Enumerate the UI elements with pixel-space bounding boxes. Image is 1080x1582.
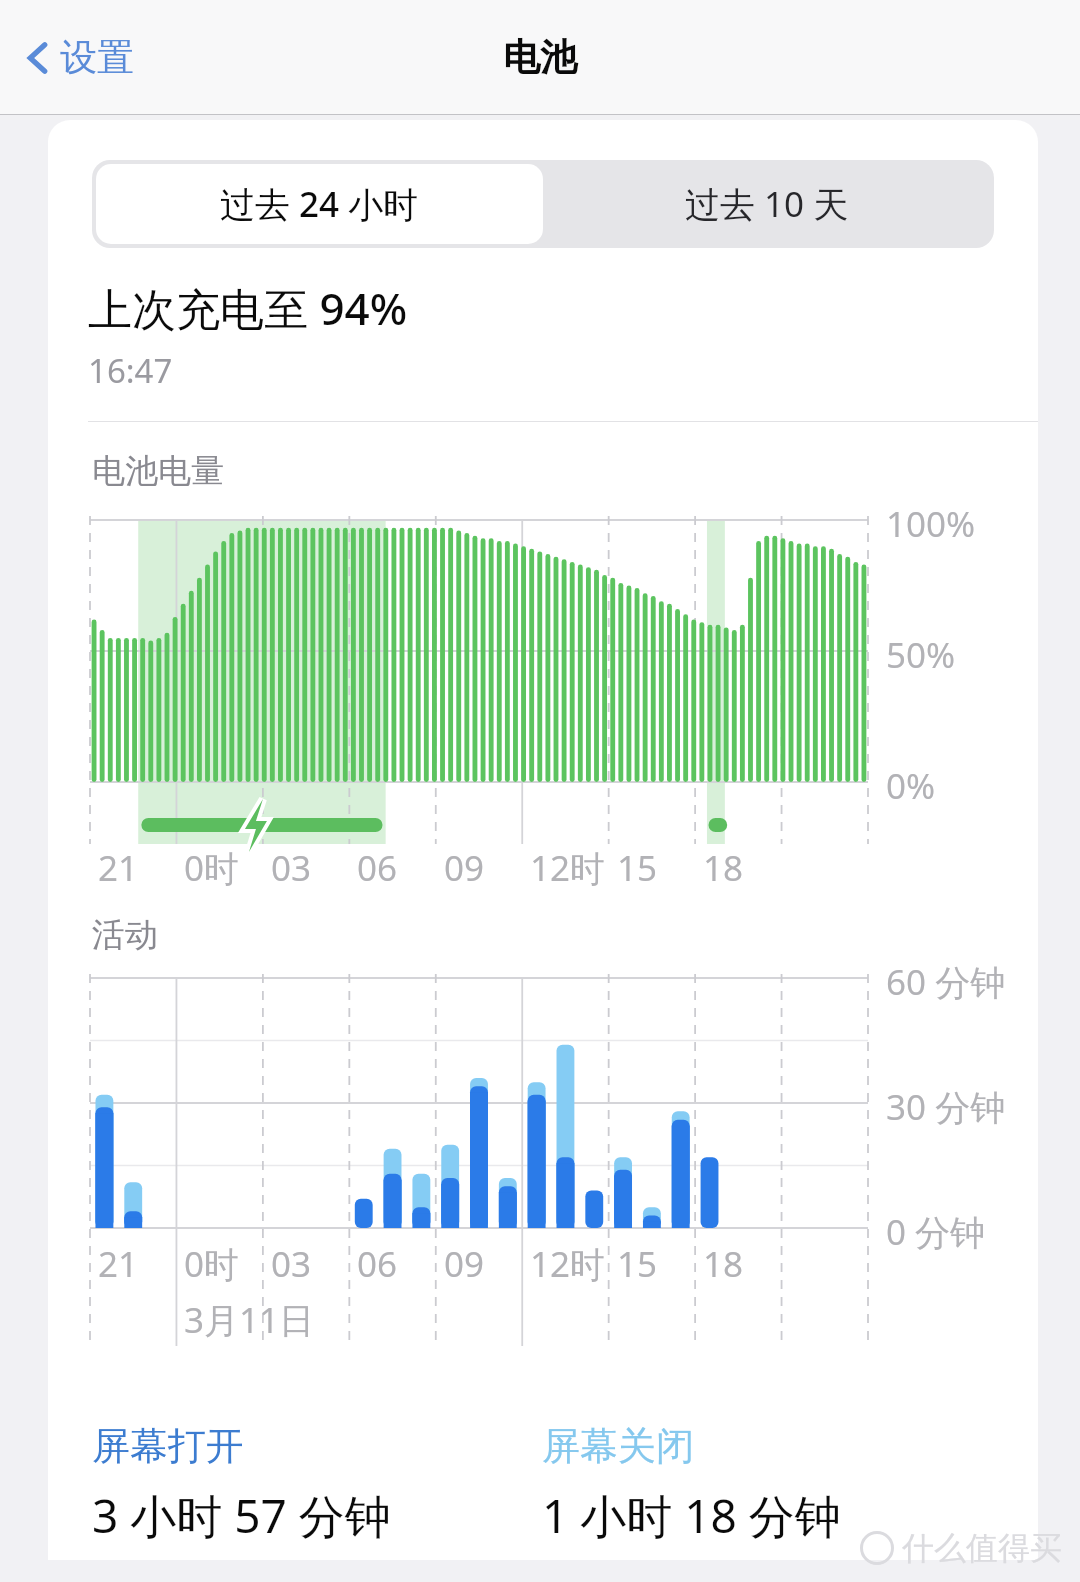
staticText: 12时	[530, 844, 606, 892]
staticText: 03	[271, 1240, 312, 1288]
staticText: 3 小时 57 分钟	[92, 1484, 391, 1547]
staticText: 18	[703, 844, 744, 892]
staticText: 18	[703, 1240, 744, 1288]
staticText: 设置	[60, 34, 134, 81]
staticText: 什么值得买	[902, 1528, 1062, 1568]
button[interactable]: 设置	[18, 28, 140, 87]
staticText: 0时	[184, 1240, 240, 1288]
button[interactable]: 屏幕打开	[92, 1422, 542, 1547]
staticText: 21	[98, 844, 139, 892]
staticText: 屏幕打开	[92, 1422, 244, 1470]
staticText: 100%	[886, 500, 976, 548]
staticText: 15	[617, 1240, 658, 1288]
staticText: 0%	[886, 762, 936, 810]
staticText: 06	[357, 1240, 398, 1288]
staticText: 过去 10 天	[685, 180, 849, 228]
staticText: 16:47	[88, 348, 173, 393]
staticText: 03	[271, 844, 312, 892]
button[interactable]: 过去 10 天	[543, 164, 990, 244]
staticText: 30 分钟	[886, 1083, 1006, 1131]
staticText: 1 小时 18 分钟	[542, 1484, 841, 1547]
staticText: 上次充电至 94%	[88, 278, 408, 338]
staticText: 电池电量	[92, 450, 224, 492]
staticText: 21	[98, 1240, 139, 1288]
staticText: 电池	[503, 34, 577, 81]
staticText: 15	[617, 844, 658, 892]
staticText: 过去 24 小时	[220, 180, 419, 228]
staticText: 3月11日	[184, 1296, 315, 1344]
staticText: 09	[444, 1240, 485, 1288]
staticText: 12时	[530, 1240, 606, 1288]
button[interactable]: 屏幕关闭	[542, 1422, 841, 1547]
staticText: 09	[444, 844, 485, 892]
staticText: 06	[357, 844, 398, 892]
button[interactable]: 过去 24 小时	[96, 164, 543, 244]
staticText: 50%	[886, 631, 956, 679]
staticText: 60 分钟	[886, 958, 1006, 1006]
staticText: 屏幕关闭	[542, 1422, 694, 1470]
staticText: 活动	[92, 914, 158, 956]
staticText: 0 分钟	[886, 1208, 986, 1256]
other: Watermark	[860, 1528, 1062, 1568]
staticText: 0时	[184, 844, 240, 892]
